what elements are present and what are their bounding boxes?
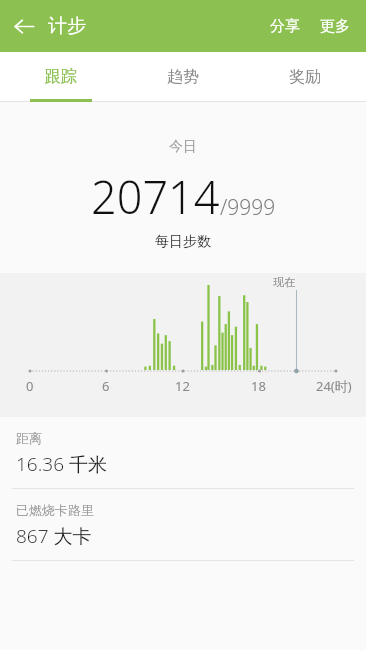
button[interactable]: 距离 bbox=[0, 417, 366, 488]
button[interactable]: 趋势 bbox=[122, 52, 244, 102]
staticText: /9999 bbox=[220, 193, 276, 222]
staticText: 12 bbox=[175, 377, 190, 395]
staticText: 今日 bbox=[169, 138, 197, 156]
staticText: 24(时) bbox=[316, 377, 352, 395]
staticText: 867 大卡 bbox=[16, 523, 92, 549]
staticText: 20714 bbox=[91, 166, 220, 227]
button[interactable]: 已燃烧卡路里 bbox=[0, 489, 366, 560]
staticText: 跟踪 bbox=[45, 67, 77, 87]
button[interactable]: Back bbox=[0, 2, 48, 50]
button[interactable]: 分享 bbox=[260, 2, 310, 51]
staticText: 奖励 bbox=[289, 67, 321, 87]
staticText: 计步 bbox=[48, 14, 86, 38]
staticText: 现在 bbox=[273, 275, 295, 289]
staticText: 每日步数 bbox=[155, 233, 211, 251]
staticText: 趋势 bbox=[167, 67, 199, 87]
staticText: 18 bbox=[251, 377, 266, 395]
staticText: 16.36 千米 bbox=[16, 451, 107, 477]
staticText: 已燃烧卡路里 bbox=[16, 502, 94, 518]
staticText: 分享 bbox=[270, 17, 300, 36]
staticText: 6 bbox=[102, 377, 110, 395]
button[interactable]: 更多 bbox=[310, 2, 366, 51]
staticText: 更多 bbox=[320, 17, 350, 36]
button[interactable]: 跟踪 bbox=[0, 52, 122, 102]
button[interactable]: 奖励 bbox=[244, 52, 366, 102]
staticText: 距离 bbox=[16, 430, 42, 446]
staticText: 0 bbox=[26, 377, 34, 395]
